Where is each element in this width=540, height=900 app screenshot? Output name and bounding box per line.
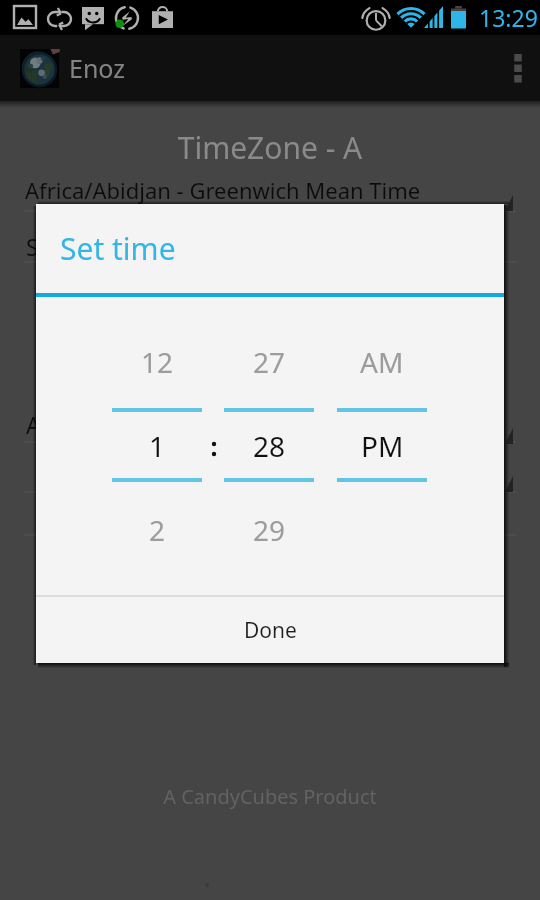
staticText: 2 bbox=[149, 511, 166, 549]
staticText: A bbox=[26, 409, 41, 440]
staticText: AM bbox=[360, 343, 404, 381]
button[interactable]: 2 bbox=[112, 500, 202, 560]
button[interactable]: 29 bbox=[224, 500, 314, 560]
button[interactable]: 12 bbox=[112, 332, 202, 392]
staticText: PM bbox=[361, 427, 404, 465]
staticText: 27 bbox=[253, 343, 286, 381]
staticText: Enoz bbox=[69, 51, 125, 85]
staticText: 13:29 bbox=[479, 2, 538, 33]
button[interactable]: 28 bbox=[224, 415, 314, 477]
staticText: A CandyCubes Product bbox=[0, 783, 540, 810]
staticText: Set time bbox=[60, 228, 176, 269]
button[interactable]: 1 bbox=[112, 415, 202, 477]
staticText: 29 bbox=[253, 511, 286, 549]
staticText: 28 bbox=[253, 427, 286, 465]
staticText: TimeZone - A bbox=[0, 127, 540, 168]
staticText: 1 bbox=[149, 427, 166, 465]
staticText: S bbox=[26, 231, 39, 262]
staticText: 12 bbox=[141, 343, 174, 381]
button[interactable]: 27 bbox=[224, 332, 314, 392]
button[interactable]: More options bbox=[496, 35, 540, 101]
staticText: Done bbox=[244, 616, 297, 645]
button[interactable]: PM bbox=[337, 415, 427, 477]
button[interactable]: Done bbox=[36, 597, 504, 663]
button[interactable]: AM bbox=[337, 332, 427, 392]
staticText: Africa/Abidjan - Greenwich Mean Time bbox=[25, 175, 421, 205]
